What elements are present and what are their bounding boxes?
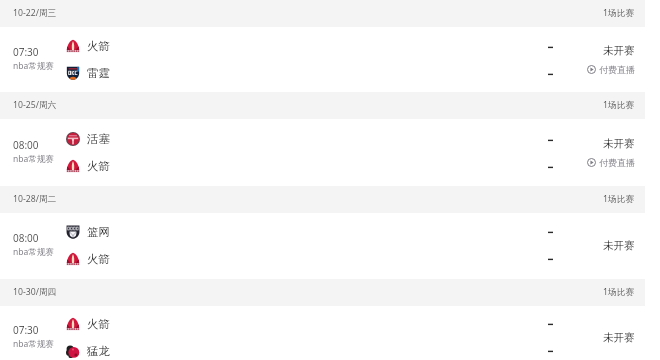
button[interactable]: 10-30/周四 <box>0 279 645 306</box>
staticText: 1场比赛 <box>603 286 635 298</box>
staticText: 08:00 <box>13 231 39 245</box>
staticText: 1场比赛 <box>603 7 635 19</box>
staticText: 1场比赛 <box>603 193 635 205</box>
button[interactable]: 付费直播 <box>587 157 635 168</box>
button[interactable]: 08:00 <box>0 119 645 186</box>
button[interactable]: 10-25/周六 <box>0 92 645 119</box>
staticText: 雷霆 <box>87 66 110 80</box>
staticText: 付费直播 <box>599 64 635 75</box>
staticText: 10-22/周三 <box>13 7 57 19</box>
staticText: 07:30 <box>13 45 39 59</box>
staticText: nba常规赛 <box>13 153 54 165</box>
staticText: 未开赛 <box>603 331 635 344</box>
staticText: 火箭 <box>87 159 110 173</box>
staticText: 活塞 <box>87 132 110 146</box>
button[interactable]: 付费直播 <box>587 64 635 75</box>
staticText: 10-28/周二 <box>13 193 57 205</box>
staticText: nba常规赛 <box>13 60 54 72</box>
staticText: 猛龙 <box>87 344 110 358</box>
staticText: 1场比赛 <box>603 99 635 111</box>
staticText: 火箭 <box>87 252 110 266</box>
button[interactable]: 08:00 <box>0 213 645 277</box>
staticText: 火箭 <box>87 317 110 331</box>
other: 付费直播 <box>587 65 596 74</box>
staticText: 未开赛 <box>603 239 635 252</box>
staticText: 付费直播 <box>599 157 635 168</box>
staticText: 未开赛 <box>603 44 635 57</box>
staticText: nba常规赛 <box>13 338 54 350</box>
button[interactable]: 10-28/周二 <box>0 186 645 213</box>
other: 付费直播 <box>587 158 596 167</box>
staticText: 10-30/周四 <box>13 286 57 298</box>
button[interactable]: 10-22/周三 <box>0 0 645 27</box>
staticText: 08:00 <box>13 138 39 152</box>
staticText: 火箭 <box>87 39 110 53</box>
button[interactable]: 07:30 <box>0 27 645 92</box>
staticText: nba常规赛 <box>13 246 54 258</box>
staticText: 10-25/周六 <box>13 99 57 111</box>
button[interactable]: 07:30 <box>0 306 645 360</box>
staticText: 未开赛 <box>603 137 635 150</box>
staticText: 篮网 <box>87 225 110 239</box>
staticText: 07:30 <box>13 323 39 337</box>
